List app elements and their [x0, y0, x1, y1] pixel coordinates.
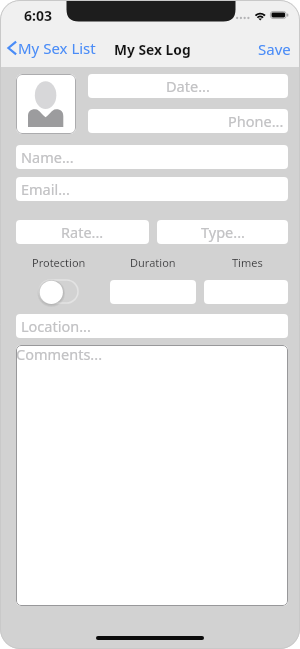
staticText: Name... — [21, 147, 74, 167]
button[interactable]: Date... — [88, 74, 288, 98]
button[interactable]: Photo — [16, 74, 76, 134]
button[interactable]: Email... — [16, 177, 288, 201]
button[interactable]: Phone... — [88, 109, 288, 133]
staticText: My Sex List — [18, 38, 96, 58]
staticText: My Sex Log — [114, 40, 191, 59]
button[interactable]: Protection toggle — [38, 278, 80, 306]
staticText: Date... — [166, 76, 210, 96]
staticText: Email... — [21, 179, 70, 199]
staticText: Times — [232, 255, 263, 270]
button[interactable]: Name... — [16, 145, 288, 169]
button[interactable]: Location... — [16, 314, 288, 338]
staticText: Phone... — [228, 111, 284, 131]
staticText: 6:03 — [24, 6, 52, 25]
staticText: Rate... — [61, 222, 104, 242]
staticText: Protection — [32, 255, 86, 270]
staticText: Type... — [201, 222, 245, 242]
button[interactable]: Rate... — [16, 220, 149, 244]
staticText: Comments... — [16, 345, 103, 364]
staticText: Location... — [21, 316, 91, 336]
button[interactable]: Comments... — [16, 345, 288, 606]
button[interactable]: Type... — [157, 220, 288, 244]
button[interactable]: My Sex List — [3, 36, 100, 60]
button[interactable]: Save — [254, 37, 295, 61]
staticText: Duration — [130, 255, 176, 270]
